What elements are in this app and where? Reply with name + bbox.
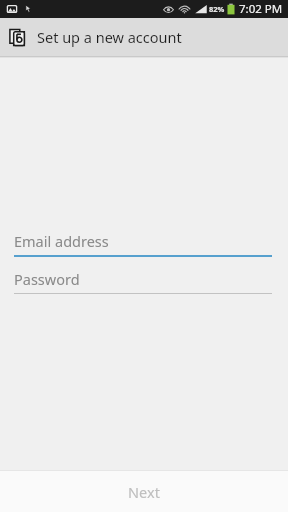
button[interactable]: App icon (0, 18, 288, 56)
staticText: Password (14, 269, 80, 289)
other: App icon (8, 28, 27, 47)
button[interactable]: Email address (14, 230, 272, 257)
staticText: Set up a new account (37, 27, 182, 47)
staticText: 7:02 PM (239, 1, 283, 17)
staticText: 82% (209, 4, 225, 14)
button[interactable]: Next (0, 471, 288, 512)
staticText: Email address (14, 231, 109, 251)
button[interactable]: Password (14, 268, 272, 294)
staticText: Next (128, 482, 160, 502)
